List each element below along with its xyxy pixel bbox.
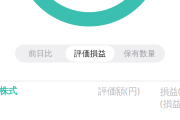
staticText: 株式	[0, 85, 17, 97]
staticText: (損益率)	[160, 97, 180, 110]
button[interactable]: 評価損益	[65, 45, 114, 61]
button[interactable]: 前日比	[15, 44, 65, 62]
button[interactable]: 保有数量	[114, 44, 164, 62]
staticText: 評価損益	[74, 49, 106, 58]
staticText: 保有数量	[123, 49, 155, 58]
staticText: 損益(円)	[160, 85, 180, 97]
staticText: 評価額(円)	[98, 85, 140, 97]
staticText: 前日比	[28, 49, 52, 58]
